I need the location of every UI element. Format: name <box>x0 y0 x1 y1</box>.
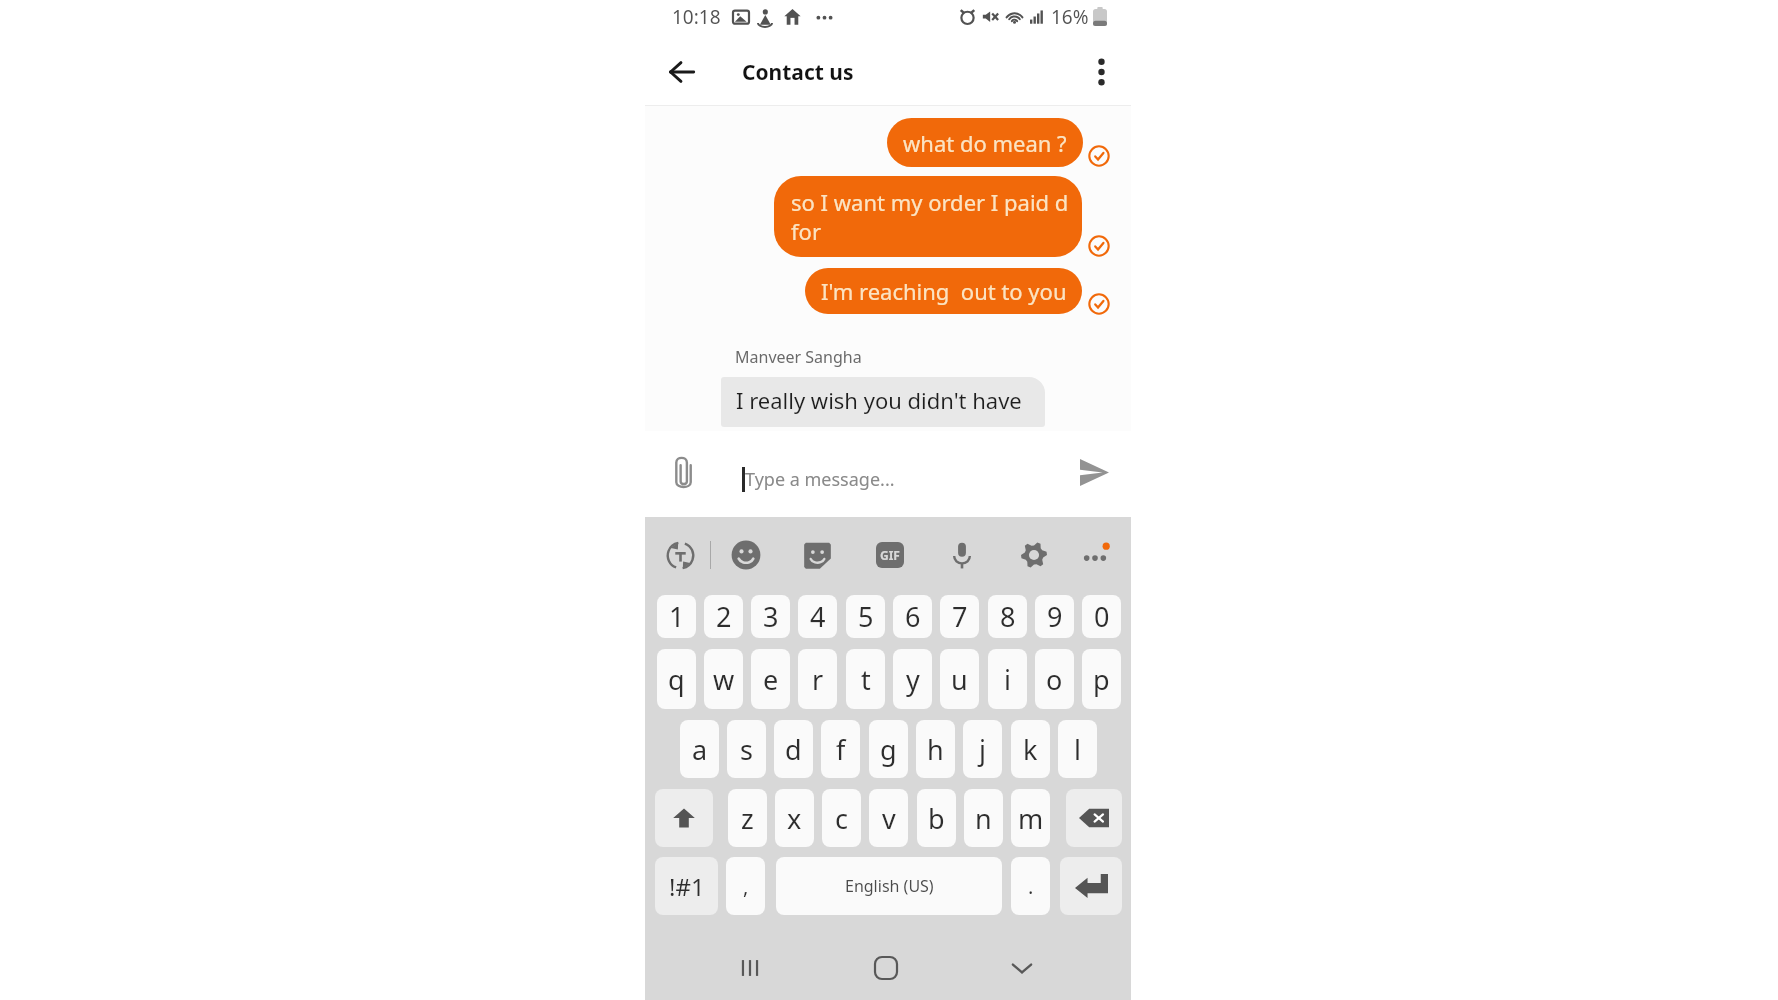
staticText: 6 <box>905 598 921 635</box>
staticText: z <box>741 800 754 837</box>
staticText: e <box>763 661 779 698</box>
staticText: k <box>1023 731 1038 768</box>
staticText: a <box>692 731 708 768</box>
button[interactable]: !#1 <box>655 857 718 915</box>
button[interactable]: z <box>728 789 767 847</box>
button[interactable]: y <box>893 649 932 709</box>
button[interactable]: h <box>916 720 955 778</box>
staticText: m <box>1018 800 1044 837</box>
button[interactable]: GIF <box>868 533 912 577</box>
staticText: w <box>713 661 735 698</box>
button[interactable]: Hide keyboard <box>992 944 1052 992</box>
button[interactable]: c <box>822 789 861 847</box>
button[interactable]: t <box>846 649 885 709</box>
button[interactable]: English (US) <box>776 857 1002 915</box>
staticText: !#1 <box>669 870 705 903</box>
staticText: h <box>927 731 944 768</box>
button[interactable]: w <box>704 649 743 709</box>
button[interactable]: 2 <box>704 595 743 638</box>
staticText: GIF <box>880 547 900 563</box>
button[interactable]: a <box>680 720 719 778</box>
button[interactable]: Emoji <box>724 533 768 577</box>
button[interactable]: v <box>869 789 908 847</box>
button[interactable]: 8 <box>988 595 1027 638</box>
button[interactable]: g <box>869 720 908 778</box>
button[interactable]: n <box>964 789 1003 847</box>
staticText: i <box>1004 661 1011 698</box>
staticText: English (US) <box>845 875 934 897</box>
staticText: 7 <box>952 598 968 635</box>
button[interactable]: 9 <box>1035 595 1074 638</box>
staticText: n <box>975 800 992 837</box>
staticText: 4 <box>810 598 826 635</box>
button[interactable]: Recents <box>720 944 780 992</box>
button[interactable]: Stickers <box>795 533 839 577</box>
button[interactable]: x <box>775 789 814 847</box>
button[interactable]: j <box>963 720 1002 778</box>
staticText: I really wish you didn't have <box>736 385 1022 415</box>
staticText: what do mean ? <box>903 128 1067 158</box>
button[interactable]: s <box>727 720 766 778</box>
button[interactable]: o <box>1035 649 1074 709</box>
staticText: so I want my order I paid d for <box>791 187 1082 246</box>
button[interactable]: 5 <box>846 595 885 638</box>
button[interactable]: Translate <box>658 533 702 577</box>
button[interactable]: r <box>798 649 837 709</box>
button[interactable]: . <box>1011 857 1050 915</box>
staticText: p <box>1093 661 1110 698</box>
button[interactable]: More options <box>1071 40 1131 104</box>
button[interactable]: Shift <box>655 789 713 847</box>
button[interactable]: b <box>917 789 956 847</box>
button[interactable]: Settings <box>1012 533 1056 577</box>
staticText: 16% <box>1051 4 1089 30</box>
button[interactable]: l <box>1058 720 1097 778</box>
button[interactable]: i <box>988 649 1027 709</box>
button[interactable]: Send <box>1072 450 1116 494</box>
staticText: Manveer Sangha <box>735 346 862 368</box>
staticText: o <box>1046 661 1063 698</box>
button[interactable]: k <box>1011 720 1050 778</box>
staticText: 5 <box>858 598 874 635</box>
staticText: x <box>787 800 802 837</box>
staticText: 9 <box>1047 598 1063 635</box>
button[interactable]: Home <box>856 944 916 992</box>
staticText: 0 <box>1094 598 1110 635</box>
button[interactable]: 3 <box>751 595 790 638</box>
button[interactable]: Enter <box>1060 857 1122 915</box>
button[interactable]: 4 <box>798 595 837 638</box>
button[interactable]: q <box>657 649 696 709</box>
button[interactable]: what do mean ? <box>887 118 1083 167</box>
staticText: . <box>1028 873 1034 900</box>
button[interactable]: e <box>751 649 790 709</box>
button[interactable]: Backspace <box>1066 789 1122 847</box>
staticText: d <box>785 731 802 768</box>
button[interactable]: Back <box>645 40 719 104</box>
button[interactable]: f <box>821 720 860 778</box>
staticText: f <box>836 731 846 768</box>
staticText: 10:18 <box>672 4 721 30</box>
staticText: 2 <box>716 598 732 635</box>
button[interactable]: p <box>1082 649 1121 709</box>
button[interactable]: m <box>1011 789 1050 847</box>
staticText: u <box>951 661 968 698</box>
button[interactable]: d <box>774 720 813 778</box>
button[interactable]: More <box>1073 533 1117 577</box>
staticText: , <box>743 873 749 900</box>
button[interactable]: Attach file <box>663 451 705 493</box>
staticText: 1 <box>669 598 685 635</box>
button[interactable]: 7 <box>940 595 979 638</box>
button[interactable]: 1 <box>657 595 696 638</box>
button[interactable]: u <box>940 649 979 709</box>
button[interactable]: 0 <box>1082 595 1121 638</box>
staticText: q <box>668 661 685 698</box>
staticText: I'm reaching out to you <box>821 276 1067 306</box>
staticText: s <box>740 731 753 768</box>
button[interactable]: , <box>726 857 765 915</box>
staticText: j <box>979 731 986 768</box>
button[interactable]: Voice input <box>940 533 984 577</box>
staticText: r <box>812 661 824 698</box>
button[interactable]: I'm reaching out to you <box>805 268 1082 314</box>
button[interactable]: 6 <box>893 595 932 638</box>
button[interactable]: so I want my order I paid d for <box>774 176 1082 257</box>
button[interactable]: I really wish you didn't have <box>721 377 1045 427</box>
